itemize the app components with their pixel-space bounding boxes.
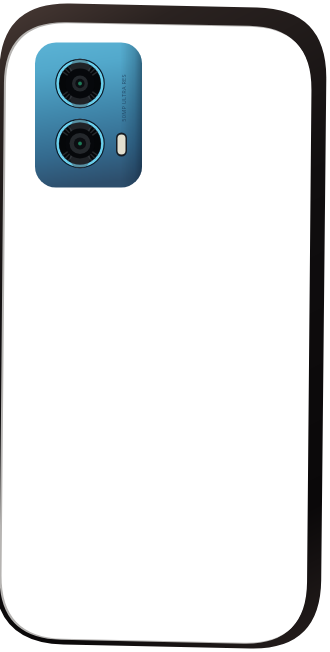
staticText: 50MP ULTRA RES	[120, 69, 128, 127]
